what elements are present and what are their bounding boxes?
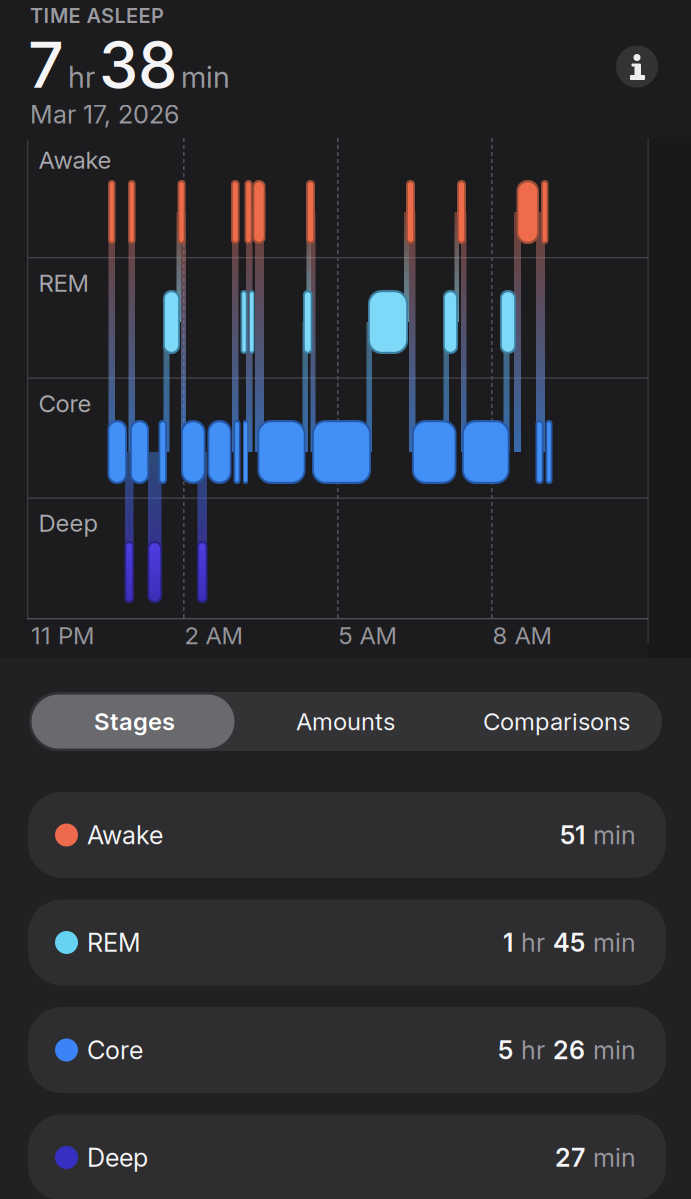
- staticText: min: [593, 927, 636, 958]
- button[interactable]: Comparisons: [451, 692, 662, 751]
- staticText: Core: [87, 1035, 143, 1065]
- staticText: Stages: [94, 707, 175, 736]
- button[interactable]: REM: [28, 899, 666, 985]
- staticText: min: [181, 59, 230, 95]
- staticText: 26: [553, 1035, 585, 1065]
- staticText: hr: [521, 1035, 545, 1065]
- staticText: TIME ASLEEP: [30, 3, 164, 28]
- staticText: 27: [555, 1142, 585, 1173]
- staticText: 5: [498, 1035, 513, 1065]
- staticText: 8 AM: [492, 621, 551, 650]
- staticText: 7: [28, 27, 64, 103]
- staticText: Amounts: [296, 707, 395, 736]
- staticText: Comparisons: [483, 707, 630, 736]
- staticText: min: [593, 1035, 636, 1065]
- button[interactable]: Stages: [29, 692, 240, 751]
- button[interactable]: Deep: [28, 1114, 666, 1199]
- staticText: Deep: [38, 508, 97, 537]
- staticText: Deep: [87, 1142, 148, 1173]
- staticText: min: [593, 820, 636, 850]
- staticText: 11 PM: [31, 621, 94, 650]
- staticText: Mar 17, 2026: [30, 99, 179, 130]
- staticText: 1: [503, 927, 513, 958]
- staticText: min: [593, 1142, 636, 1173]
- staticText: 51: [560, 820, 585, 850]
- button[interactable]: Awake: [28, 792, 666, 878]
- staticText: hr: [68, 59, 95, 95]
- staticText: 5 AM: [338, 621, 396, 650]
- staticText: REM: [87, 927, 141, 958]
- button[interactable]: More information: [616, 45, 658, 87]
- staticText: 45: [553, 927, 585, 958]
- staticText: REM: [38, 268, 88, 297]
- staticText: Core: [38, 389, 91, 418]
- staticText: 38: [99, 27, 177, 103]
- button[interactable]: Amounts: [240, 692, 451, 751]
- staticText: hr: [521, 927, 545, 958]
- staticText: Awake: [38, 145, 111, 174]
- staticText: 2 AM: [184, 621, 242, 650]
- button[interactable]: Core: [28, 1007, 666, 1093]
- staticText: Awake: [87, 820, 163, 850]
